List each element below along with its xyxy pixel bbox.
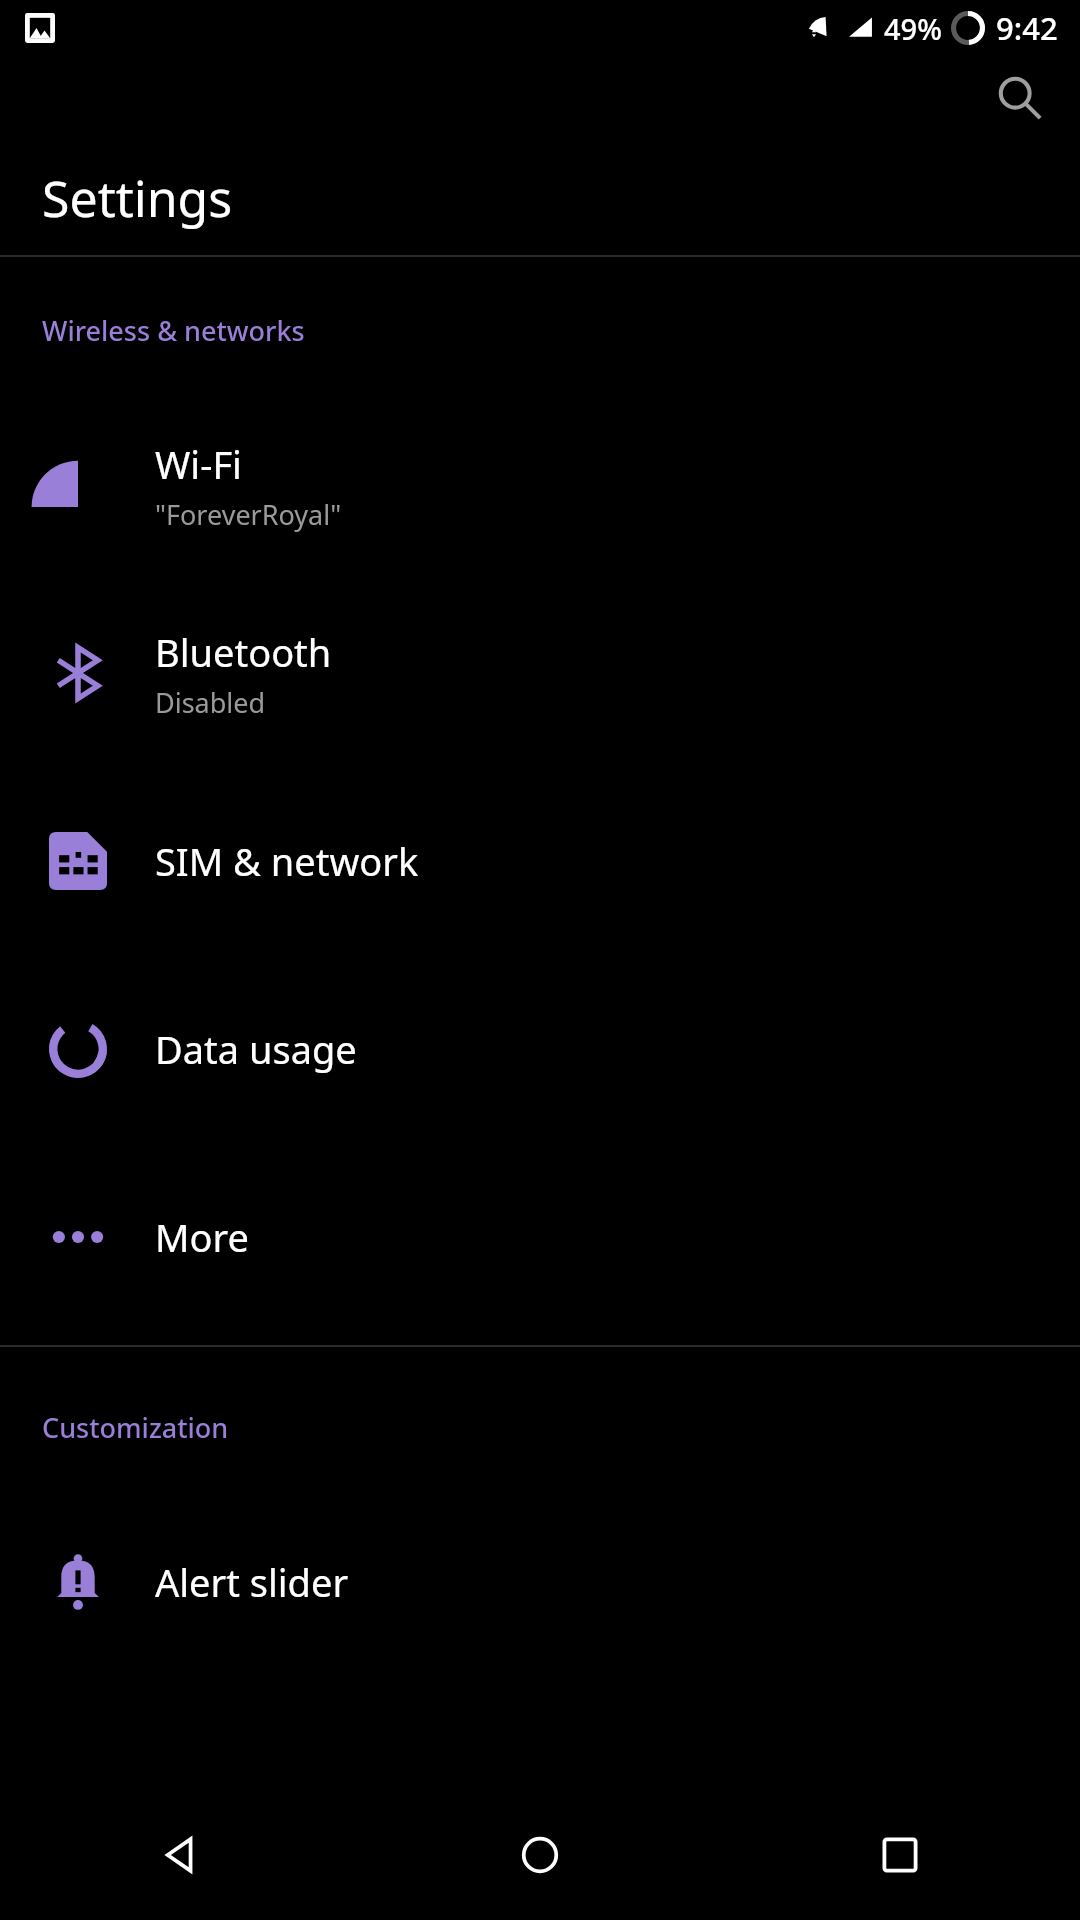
- staticText: Customization: [42, 1409, 229, 1446]
- staticText: "ForeverRoyal": [155, 496, 342, 533]
- staticText: Settings: [42, 164, 233, 232]
- staticText: 9:42: [996, 7, 1058, 49]
- staticText: Bluetooth: [155, 626, 332, 678]
- button[interactable]: Back: [0, 1790, 360, 1920]
- staticText: Wireless & networks: [42, 312, 305, 349]
- staticText: SIM & network: [155, 835, 419, 887]
- button[interactable]: Search: [980, 58, 1060, 138]
- staticText: Alert slider: [155, 1556, 349, 1608]
- button[interactable]: Alert slider: [0, 1488, 1080, 1676]
- staticText: More: [155, 1211, 249, 1263]
- button[interactable]: More: [0, 1143, 1080, 1331]
- button[interactable]: Home: [360, 1790, 720, 1920]
- button[interactable]: Recent apps: [720, 1790, 1080, 1920]
- staticText: Disabled: [155, 684, 266, 721]
- button[interactable]: SIM & network: [0, 767, 1080, 955]
- staticText: Data usage: [155, 1023, 357, 1075]
- staticText: 49%: [884, 9, 942, 48]
- staticText: Wi-Fi: [155, 438, 242, 490]
- button[interactable]: Wi-Fi: [0, 391, 1080, 579]
- button[interactable]: Data usage: [0, 955, 1080, 1143]
- button[interactable]: Bluetooth: [0, 579, 1080, 767]
